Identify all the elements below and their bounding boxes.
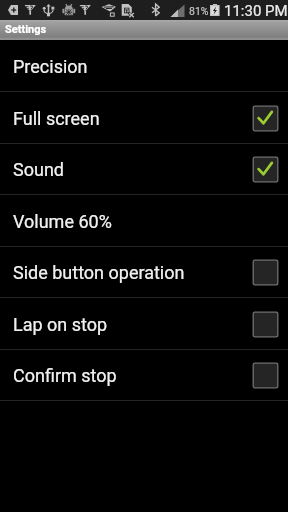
staticText: Sound xyxy=(13,159,64,180)
other: Side button operation xyxy=(252,259,279,286)
button[interactable]: Confirm stop xyxy=(0,349,288,401)
staticText: Side button operation xyxy=(13,262,185,283)
staticText: Lap on stop xyxy=(13,314,108,335)
button[interactable]: Precision xyxy=(0,40,288,92)
staticText: Precision xyxy=(13,56,88,77)
staticText: 11:30 PM xyxy=(224,2,288,20)
button[interactable]: Volume 60% xyxy=(0,195,288,247)
staticText: Settings xyxy=(5,23,47,36)
other: Confirm stop xyxy=(252,362,279,389)
other: Full screen xyxy=(252,105,279,132)
button[interactable]: Lap on stop xyxy=(0,298,288,350)
other: Lap on stop xyxy=(252,311,279,338)
button[interactable]: Side button operation xyxy=(0,246,288,298)
staticText: 81% xyxy=(189,5,209,17)
staticText: Volume 60% xyxy=(13,211,112,232)
staticText: Confirm stop xyxy=(13,365,117,386)
button[interactable]: Full screen xyxy=(0,92,288,144)
staticText: Full screen xyxy=(13,108,100,129)
button[interactable]: Sound xyxy=(0,143,288,195)
other: Sound xyxy=(252,156,279,183)
